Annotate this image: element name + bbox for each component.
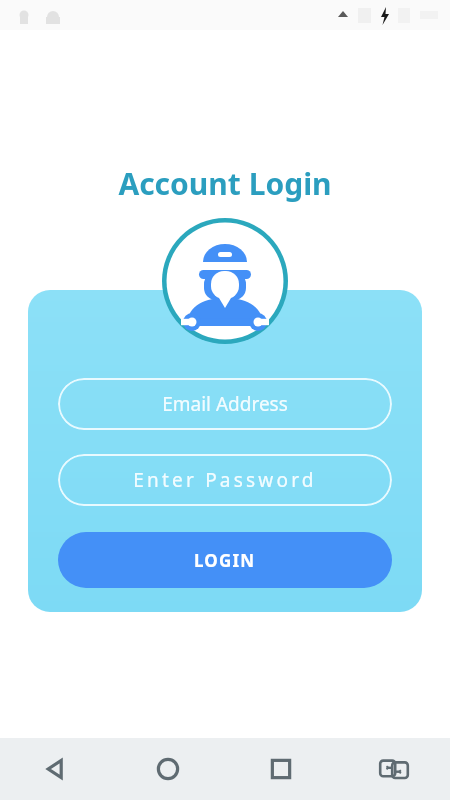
button[interactable]: LOGIN [58, 532, 392, 588]
button[interactable]: Email Address [58, 378, 392, 430]
staticText: Account Login [118, 163, 332, 204]
staticText: Enter Password [133, 467, 317, 493]
button[interactable]: Split screen [337, 738, 450, 800]
staticText: LOGIN [194, 549, 256, 572]
button[interactable]: Enter Password [58, 454, 392, 506]
other: Profile [162, 218, 288, 344]
staticText: Email Address [162, 391, 288, 417]
button[interactable]: Recents [224, 738, 337, 800]
button[interactable]: Home [112, 738, 224, 800]
button[interactable]: Back [0, 738, 112, 800]
